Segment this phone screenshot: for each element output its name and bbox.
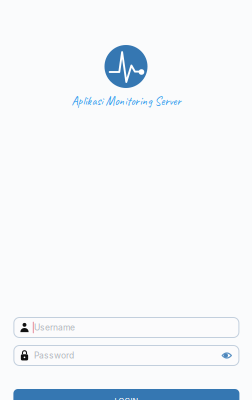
button[interactable]: LOGIN (13, 389, 239, 400)
staticText: Username (34, 322, 75, 333)
button[interactable]: Password (13, 345, 239, 366)
staticText: Password (34, 350, 74, 361)
button[interactable]: Username (13, 317, 239, 338)
staticText: LOGIN (114, 396, 138, 400)
staticText: Aplikasi Monitoring Server (71, 93, 180, 109)
